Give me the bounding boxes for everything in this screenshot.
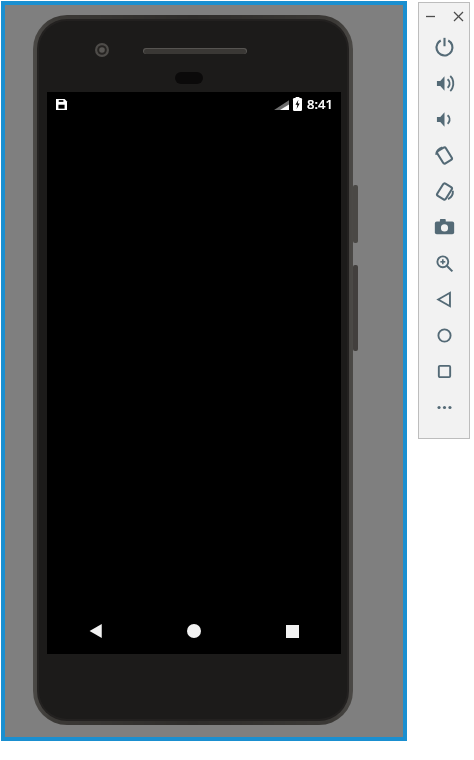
button[interactable]: Zoom bbox=[419, 245, 469, 281]
button[interactable]: Home bbox=[145, 608, 243, 654]
button[interactable]: Volume up bbox=[419, 65, 469, 101]
button[interactable]: Home bbox=[419, 317, 469, 353]
button[interactable]: Power bbox=[419, 29, 469, 65]
button[interactable]: Close bbox=[448, 6, 468, 26]
button[interactable]: Rotate left bbox=[419, 137, 469, 173]
button[interactable]: More bbox=[419, 389, 469, 425]
button[interactable]: Minimize bbox=[420, 6, 440, 26]
button[interactable]: Overview bbox=[419, 353, 469, 389]
button[interactable]: Volume down bbox=[419, 101, 469, 137]
button[interactable]: Take screenshot bbox=[419, 209, 469, 245]
button[interactable]: Back bbox=[47, 608, 145, 654]
button[interactable]: Recent apps bbox=[243, 608, 341, 654]
button[interactable]: Back bbox=[419, 281, 469, 317]
staticText: 8:41 bbox=[307, 95, 333, 113]
button[interactable]: Rotate right bbox=[419, 173, 469, 209]
